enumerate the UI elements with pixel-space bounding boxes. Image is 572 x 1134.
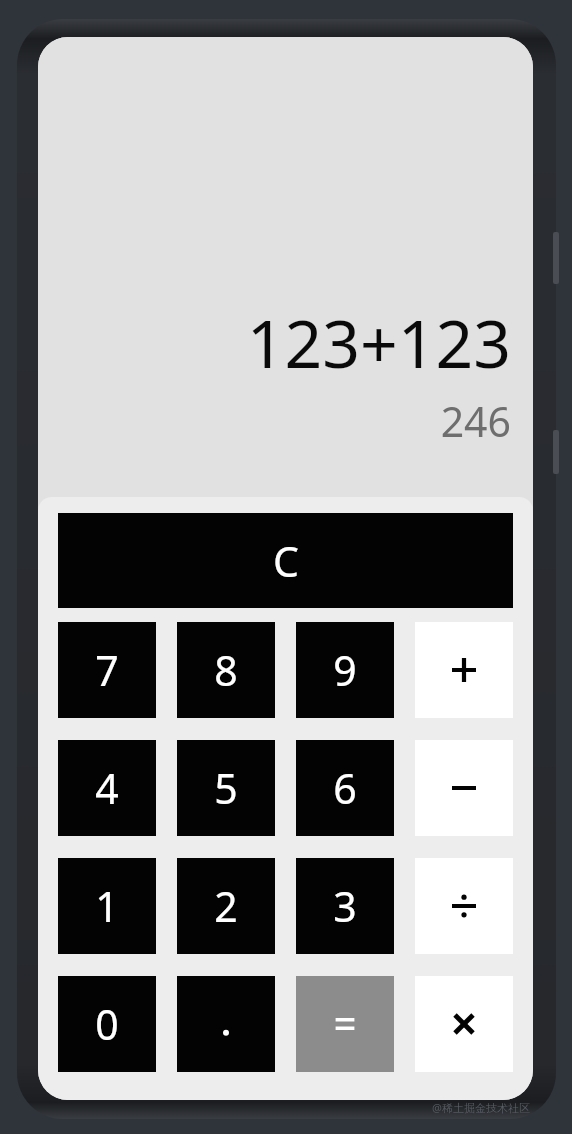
staticText: 6 — [333, 760, 357, 816]
staticText: 1 — [95, 878, 119, 934]
staticText: @稀土掘金技术社区 — [432, 1100, 530, 1115]
staticText: 9 — [333, 642, 357, 698]
button[interactable]: 8 — [177, 622, 275, 718]
button[interactable]: 4 — [58, 740, 156, 836]
button[interactable]: 7 — [58, 622, 156, 718]
button[interactable]: 1 — [58, 858, 156, 954]
staticText: 2 — [214, 878, 238, 934]
staticText: 8 — [214, 642, 238, 698]
staticText: 7 — [95, 642, 119, 698]
button[interactable]: Plus — [415, 622, 513, 718]
staticText: 3 — [333, 878, 357, 934]
staticText: 4 — [95, 760, 119, 816]
button[interactable]: Divide — [415, 858, 513, 954]
button[interactable]: 9 — [296, 622, 394, 718]
button[interactable]: Decimal point — [177, 976, 275, 1072]
button[interactable]: 5 — [177, 740, 275, 836]
staticText: 123+123 — [38, 297, 511, 387]
button[interactable]: Multiply — [415, 976, 513, 1072]
button[interactable]: 3 — [296, 858, 394, 954]
button[interactable]: C — [58, 513, 513, 608]
staticText: 246 — [38, 393, 511, 449]
button[interactable]: Equals — [296, 976, 394, 1072]
button[interactable]: 6 — [296, 740, 394, 836]
button[interactable]: 2 — [177, 858, 275, 954]
button[interactable]: Minus — [415, 740, 513, 836]
staticText: 5 — [214, 760, 238, 816]
staticText: C — [273, 533, 299, 589]
staticText: 0 — [95, 996, 119, 1052]
button[interactable]: 0 — [58, 976, 156, 1072]
